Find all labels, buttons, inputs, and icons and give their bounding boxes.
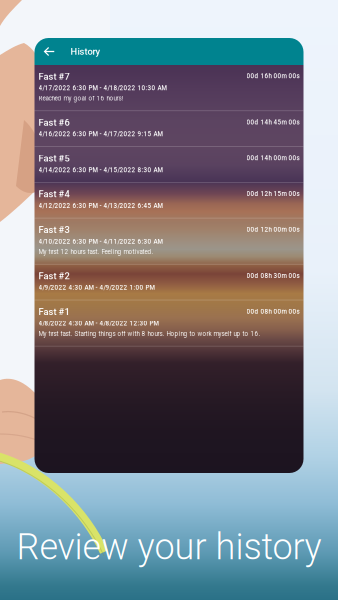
staticText: My first 12 hours fast. Feeling motivate… [38,248,153,255]
staticText: 4/17/2022 6:30 PM - 4/18/2022 10:30 AM [38,84,166,92]
staticText: History [70,46,100,57]
button[interactable]: Fast #6 [34,111,303,147]
staticText: Fast #6 [38,117,69,128]
staticText: Fast #2 [38,271,69,281]
staticText: Fast #1 [38,306,69,317]
staticText: 00d 16h 00m 00s [246,72,299,80]
staticText: 00d 14h 45m 00s [246,119,299,126]
button[interactable]: Fast #2 [34,265,303,300]
staticText: 4/16/2022 6:30 PM - 4/17/2022 9:15 AM [38,131,162,138]
staticText: Reached my goal of 16 hours! [38,95,123,102]
staticText: 00d 08h 00m 00s [246,308,299,315]
staticText: Fast #5 [38,153,69,164]
staticText: Review your history [16,526,321,568]
staticText: 00d 12h 00m 00s [246,226,299,233]
staticText: My first fast. Starting things off with … [38,330,260,337]
button[interactable]: Fast #3 [34,218,303,265]
button[interactable]: Back [37,38,61,65]
staticText: 00d 14h 00m 00s [246,154,299,162]
staticText: 4/14/2022 6:30 PM - 4/15/2022 8:30 AM [38,166,162,174]
staticText: 4/12/2022 6:30 PM - 4/13/2022 6:45 AM [38,202,162,209]
staticText: 00d 08h 30m 00s [246,272,299,279]
staticText: Fast #4 [38,189,69,200]
button[interactable]: Fast #1 [34,300,303,346]
button[interactable]: Fast #5 [34,147,303,183]
button[interactable]: Fast #7 [34,65,303,111]
staticText: 00d 12h 15m 00s [246,190,299,197]
staticText: Fast #3 [38,224,69,235]
button[interactable]: Fast #4 [34,183,303,218]
staticText: 4/9/2022 4:30 AM - 4/9/2022 1:00 PM [38,284,154,291]
staticText: 4/10/2022 6:30 PM - 4/11/2022 6:30 AM [38,238,162,245]
staticText: Fast #7 [38,71,69,82]
staticText: 4/8/2022 4:30 AM - 4/8/2022 12:30 PM [38,320,158,327]
